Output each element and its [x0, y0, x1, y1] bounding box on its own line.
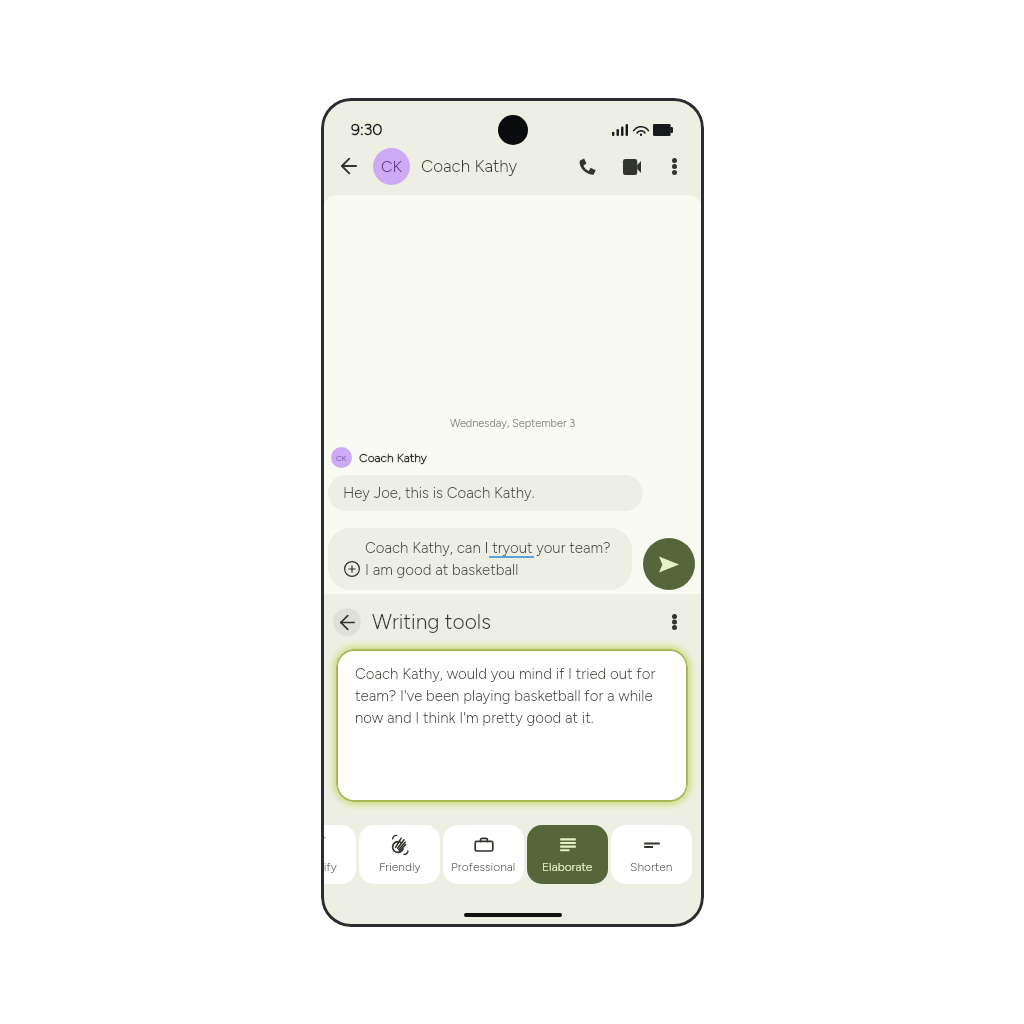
button[interactable]: Coach Kathy, can I tryout your team?: [328, 528, 632, 590]
staticText: Elaborate: [542, 860, 593, 874]
staticText: 9:30: [351, 120, 383, 139]
button[interactable]: Video call: [616, 151, 647, 182]
staticText: Writing tools: [372, 609, 492, 634]
button[interactable]: Shorten: [611, 825, 692, 884]
staticText: I am good at basketball: [365, 561, 519, 579]
staticText: Coach Kathy, would you mind if I tried o…: [355, 665, 674, 727]
button[interactable]: Contact avatar: [373, 148, 410, 185]
button[interactable]: Hey Joe, this is Coach Kathy.: [328, 475, 643, 511]
button[interactable]: Elaborate: [527, 825, 608, 884]
staticText: Hey Joe, this is Coach Kathy.: [343, 484, 535, 502]
button[interactable]: More options: [661, 609, 687, 635]
staticText: Friendly: [379, 860, 421, 874]
staticText: Simplify: [321, 860, 337, 874]
staticText: Coach Kathy: [359, 451, 427, 465]
staticText: CK: [336, 453, 347, 463]
button[interactable]: Simplify: [321, 825, 356, 884]
staticText: Coach Kathy: [421, 156, 518, 176]
staticText: Wednesday, September 3: [322, 417, 703, 430]
staticText: Shorten: [630, 860, 673, 874]
button[interactable]: Back: [333, 150, 365, 182]
staticText: Coach Kathy, can I tryout your team?: [365, 539, 611, 557]
button[interactable]: Professional: [443, 825, 524, 884]
button[interactable]: Call: [572, 151, 603, 182]
button[interactable]: More options: [660, 152, 688, 180]
button[interactable]: Friendly: [359, 825, 440, 884]
button[interactable]: Back: [333, 608, 361, 636]
button[interactable]: Coach Kathy, would you mind if I tried o…: [336, 649, 688, 802]
staticText: Professional: [451, 860, 516, 874]
button[interactable]: Send: [643, 538, 695, 590]
staticText: CK: [381, 157, 402, 176]
